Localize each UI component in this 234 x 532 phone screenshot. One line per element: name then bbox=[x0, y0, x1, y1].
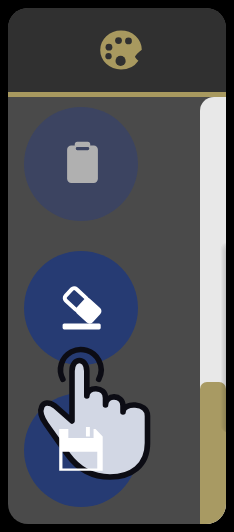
button[interactable]: Erase bbox=[24, 251, 138, 365]
button[interactable]: Palette bbox=[93, 22, 149, 78]
button[interactable]: Brush size bbox=[200, 97, 226, 524]
button[interactable]: Paste bbox=[24, 107, 138, 221]
button[interactable]: Save bbox=[24, 393, 138, 507]
